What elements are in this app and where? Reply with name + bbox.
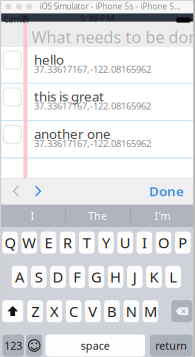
staticText: W: [22, 233, 36, 252]
staticText: B: [107, 301, 117, 321]
staticText: 37.33617167,-122.08165962: [34, 137, 151, 149]
button[interactable]: J: [127, 266, 143, 288]
staticText: I'm: [154, 209, 170, 223]
button[interactable]: A: [12, 266, 27, 288]
staticText: D: [52, 267, 63, 287]
staticText: G: [91, 267, 102, 287]
button[interactable]: T: [79, 232, 95, 254]
button[interactable]: O: [156, 232, 171, 254]
button[interactable]: R: [60, 232, 75, 254]
staticText: U: [120, 233, 131, 252]
button[interactable]: Previous field: [8, 183, 24, 199]
staticText: C: [69, 301, 78, 321]
staticText: V: [88, 301, 97, 321]
staticText: Z: [31, 301, 39, 321]
staticText: P: [178, 233, 187, 252]
button[interactable]: Emoji keyboard: [26, 334, 42, 356]
staticText: What needs to be done?: [31, 26, 195, 48]
staticText: Y: [102, 233, 110, 252]
button[interactable]: E: [41, 232, 56, 254]
staticText: space: [81, 338, 110, 353]
button[interactable]: L: [165, 266, 181, 288]
staticText: F: [73, 267, 81, 287]
staticText: S: [35, 267, 43, 287]
button[interactable]: Z: [27, 300, 43, 322]
staticText: L: [169, 267, 177, 287]
button[interactable]: M: [143, 300, 158, 322]
button[interactable]: I: [137, 232, 152, 254]
staticText: O: [158, 233, 169, 252]
button[interactable]: The: [65, 204, 130, 227]
button[interactable]: return: [150, 334, 193, 356]
staticText: another one: [34, 125, 111, 143]
staticText: return: [155, 338, 187, 353]
button[interactable]: I'm: [130, 204, 195, 227]
button[interactable]: Shift: [2, 300, 23, 322]
button[interactable]: Complete this is great: [3, 88, 21, 106]
button[interactable]: U: [117, 232, 133, 254]
staticText: 123: [4, 338, 22, 353]
button[interactable]: N: [123, 300, 139, 322]
staticText: A: [15, 267, 24, 287]
button[interactable]: C: [66, 300, 81, 322]
button[interactable]: Complete hello: [3, 51, 21, 69]
button[interactable]: space: [45, 334, 145, 356]
staticText: iOS Simulator - iPhone 5s - iPhone 5...: [39, 1, 180, 12]
button[interactable]: H: [108, 266, 123, 288]
button[interactable]: I: [0, 204, 65, 227]
staticText: J: [133, 267, 137, 287]
button[interactable]: D: [50, 266, 66, 288]
staticText: Q: [4, 233, 15, 252]
button[interactable]: W: [21, 232, 37, 254]
staticText: E: [44, 233, 52, 252]
staticText: T: [83, 233, 91, 252]
staticText: M: [144, 301, 157, 321]
staticText: The: [88, 209, 107, 223]
button[interactable]: P: [175, 232, 191, 254]
button[interactable]: S: [31, 266, 47, 288]
button[interactable]: X: [47, 300, 62, 322]
staticText: N: [126, 301, 137, 321]
staticText: I: [142, 233, 147, 252]
staticText: 5:35 PM: [80, 11, 115, 24]
staticText: Done: [149, 182, 184, 200]
staticText: 37.33617167,-122.08165962: [34, 100, 151, 112]
button[interactable]: Next field: [30, 183, 46, 199]
staticText: X: [50, 301, 59, 321]
staticText: this is great: [34, 87, 104, 105]
staticText: R: [63, 233, 72, 252]
button[interactable]: V: [85, 300, 101, 322]
staticText: H: [110, 267, 121, 287]
staticText: I: [30, 209, 34, 223]
button[interactable]: Done: [150, 182, 188, 200]
staticText: Carrier: [3, 14, 29, 25]
staticText: K: [149, 267, 158, 287]
staticText: 37.33617167,-122.08165962: [34, 63, 151, 75]
button[interactable]: 123: [2, 334, 24, 356]
button[interactable]: K: [146, 266, 162, 288]
staticText: hello: [34, 51, 64, 68]
button[interactable]: Delete: [171, 300, 192, 322]
button[interactable]: Y: [98, 232, 114, 254]
button[interactable]: F: [69, 266, 85, 288]
button[interactable]: Complete another one: [3, 125, 21, 143]
button[interactable]: G: [89, 266, 104, 288]
button[interactable]: B: [104, 300, 120, 322]
button[interactable]: Q: [2, 232, 18, 254]
